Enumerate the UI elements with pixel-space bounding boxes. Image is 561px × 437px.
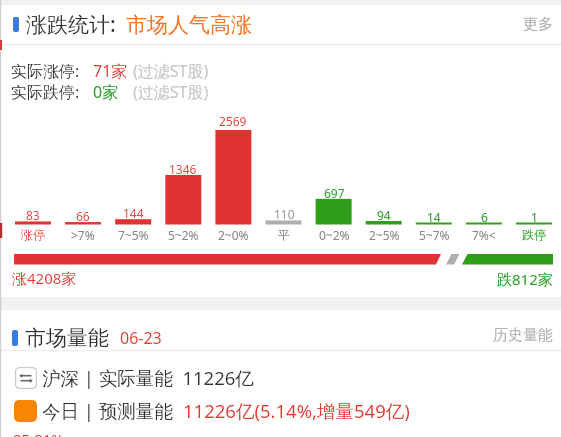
button[interactable]: 市场量能	[0, 322, 561, 353]
staticText: 14	[427, 209, 441, 223]
button[interactable]: 更多	[523, 15, 561, 34]
staticText: >7%	[71, 227, 95, 241]
button[interactable]: 涨跌统计:	[0, 5, 561, 44]
staticText: 2~5%	[369, 227, 400, 241]
staticText: 更多	[523, 15, 553, 34]
staticText: 2~0%	[218, 227, 249, 241]
staticText: 06-23	[120, 327, 162, 349]
staticText: 实际跌停:	[11, 81, 80, 103]
staticText: 94	[377, 207, 391, 221]
button[interactable]: 今日 | 预测量能	[0, 397, 561, 424]
staticText: 5~7%	[419, 227, 450, 241]
staticText: 市场人气高涨	[126, 12, 252, 38]
staticText: 110	[274, 206, 295, 220]
staticText: 7~5%	[118, 227, 149, 241]
staticText: 71家	[93, 60, 128, 82]
staticText: (过滤ST股)	[133, 81, 209, 103]
staticText: 涨4208家	[12, 268, 77, 288]
staticText: 沪深 | 实际量能 11226亿	[42, 365, 254, 390]
staticText: 涨跌统计:	[26, 10, 116, 39]
staticText: 144	[123, 205, 144, 219]
staticText: (过滤ST股)	[133, 60, 209, 82]
staticText: 跌812家	[497, 269, 553, 287]
staticText: 6	[481, 209, 488, 223]
staticText: 697	[324, 185, 345, 199]
staticText: 2569	[219, 113, 247, 127]
staticText: 0~2%	[319, 227, 350, 241]
staticText: 7%<	[472, 227, 496, 241]
staticText: 66	[76, 208, 90, 222]
staticText: 市场量能	[25, 325, 109, 351]
staticText: 平	[278, 227, 290, 241]
staticText: 历史量能	[493, 326, 553, 343]
staticText: 跌停	[522, 227, 546, 241]
staticText: 5~2%	[168, 227, 199, 241]
staticText: 1	[531, 209, 538, 223]
staticText: 83	[26, 207, 40, 221]
staticText: 1346	[169, 161, 197, 175]
staticText: 11226亿(5.14%,增量549亿)	[183, 398, 410, 423]
button[interactable]: 沪深 | 实际量能 11226亿	[0, 364, 561, 391]
button[interactable]: 历史量能	[0, 326, 553, 343]
staticText: 今日 | 预测量能	[42, 398, 183, 423]
staticText: 涨停	[21, 227, 45, 241]
staticText: 25.81%	[13, 429, 64, 437]
staticText: 实际涨停:	[11, 60, 80, 82]
staticText: 0家	[93, 81, 119, 103]
